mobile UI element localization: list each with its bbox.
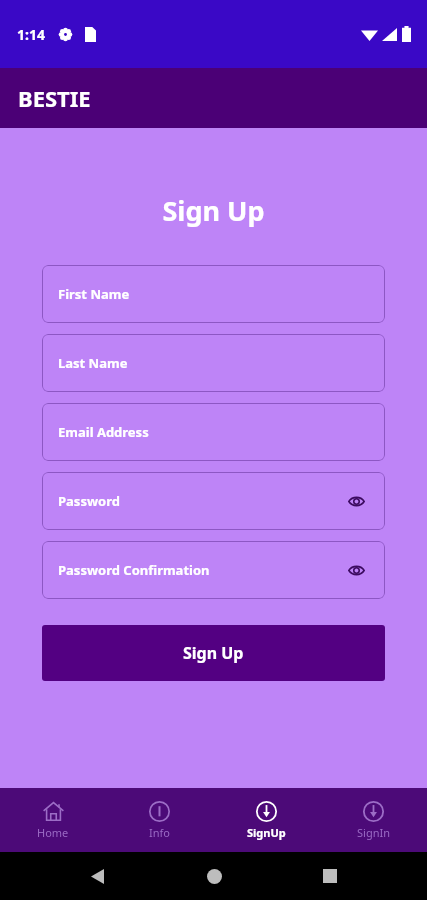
staticText: Email Address — [58, 423, 149, 441]
staticText: Info — [149, 825, 170, 840]
button[interactable]: Password — [42, 472, 385, 530]
staticText: First Name — [58, 285, 130, 303]
button[interactable]: Last Name — [42, 334, 385, 392]
button[interactable]: Info — [106, 788, 213, 852]
button[interactable]: First Name — [42, 265, 385, 323]
button[interactable]: Show password — [343, 557, 369, 583]
staticText: Password Confirmation — [58, 561, 210, 579]
staticText: BESTIE — [18, 83, 91, 113]
staticText: Sign Up — [162, 192, 265, 229]
staticText: Sign Up — [183, 642, 244, 664]
button[interactable]: SignIn — [320, 788, 427, 852]
button[interactable]: Email Address — [42, 403, 385, 461]
button[interactable]: SignUp — [213, 788, 320, 852]
staticText: 1:14 — [17, 25, 45, 44]
button[interactable]: Home — [194, 856, 234, 896]
button[interactable]: Show password — [343, 488, 369, 514]
staticText: SignIn — [357, 825, 390, 840]
staticText: Password — [58, 492, 120, 510]
button[interactable]: Recent apps — [310, 856, 350, 896]
button[interactable]: Home — [0, 788, 106, 852]
button[interactable]: Sign Up — [42, 625, 385, 681]
button[interactable]: Back — [77, 856, 117, 896]
button[interactable]: Password Confirmation — [42, 541, 385, 599]
staticText: Home — [37, 825, 69, 840]
staticText: Last Name — [58, 354, 128, 372]
staticText: SignUp — [247, 825, 286, 840]
